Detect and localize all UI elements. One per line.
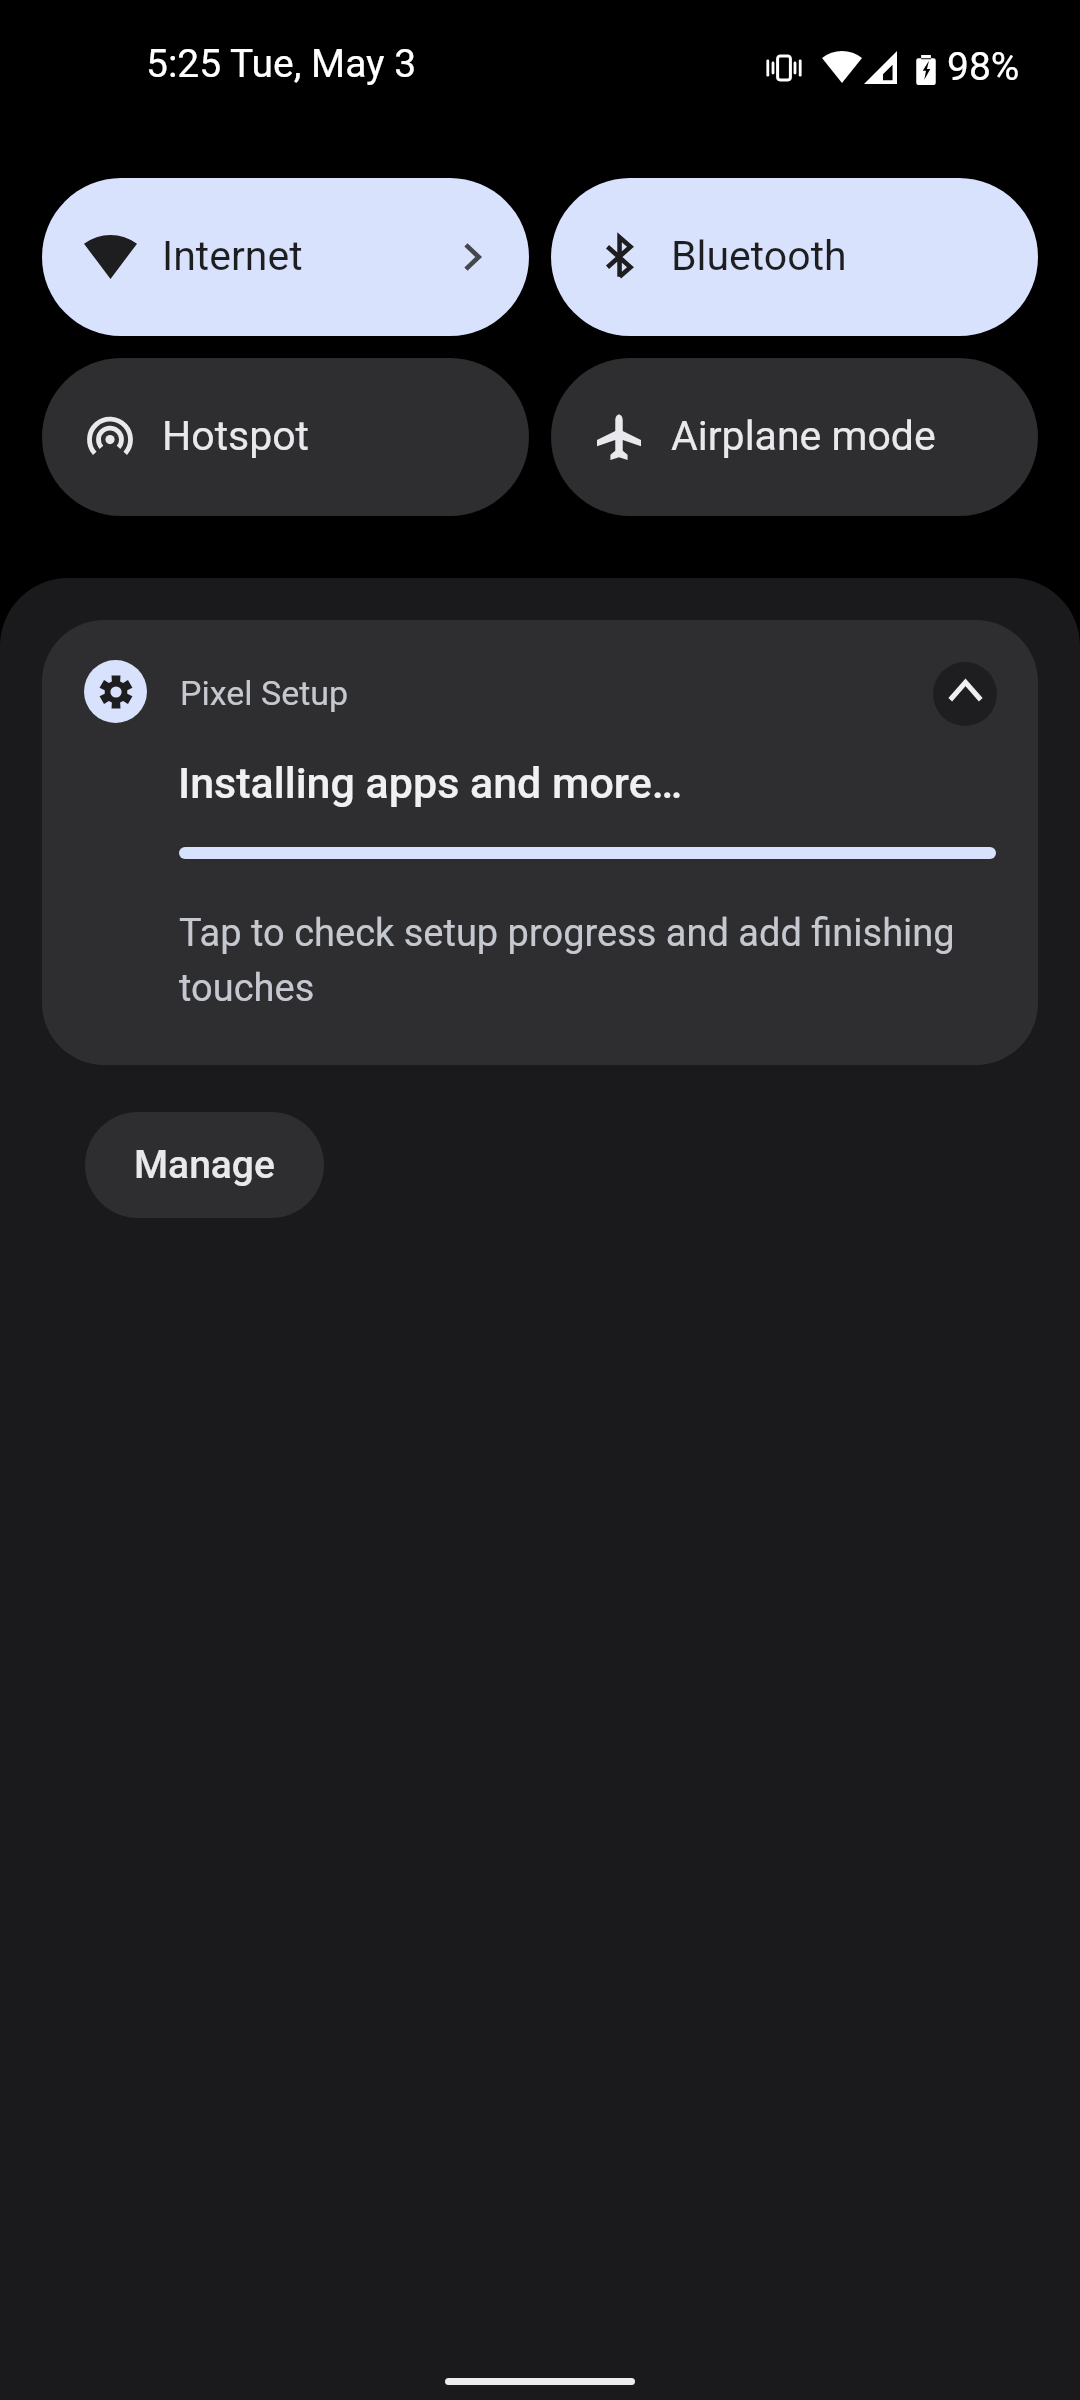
staticText: Installing apps and more… — [178, 758, 683, 808]
button[interactable]: Bluetooth — [551, 178, 1038, 336]
staticText: Airplane mode — [671, 412, 936, 460]
staticText: Hotspot — [162, 412, 310, 460]
staticText: Manage — [134, 1142, 275, 1188]
button[interactable]: Pixel Setup — [42, 620, 1038, 1065]
staticText: 98% — [947, 44, 1020, 90]
staticText: Pixel Setup — [180, 673, 349, 713]
staticText: touches — [179, 966, 315, 1011]
button[interactable]: Collapse notification — [933, 662, 997, 726]
button[interactable]: Hotspot — [42, 358, 529, 516]
button[interactable]: Manage — [85, 1112, 324, 1218]
staticText: Bluetooth — [671, 232, 847, 280]
staticText: Internet — [162, 232, 303, 280]
button[interactable]: Internet — [42, 178, 529, 336]
staticText: Tap to check setup progress and add fini… — [179, 911, 955, 956]
staticText: 5:25 Tue, May 3 — [146, 41, 417, 87]
button[interactable]: Airplane mode — [551, 358, 1038, 516]
